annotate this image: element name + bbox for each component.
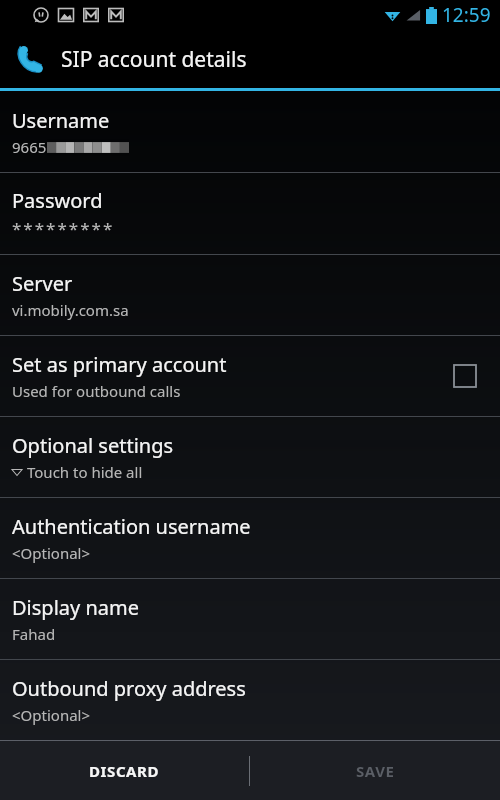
staticText: Used for outbound calls [12, 381, 181, 401]
button[interactable]: Optional settings [0, 417, 500, 497]
staticText: 9665 [12, 137, 47, 157]
staticText: Touch to hide all [27, 462, 143, 482]
button[interactable]: Set as primary account [0, 336, 500, 416]
staticText: <Optional> [12, 543, 91, 563]
staticText: vi.mobily.com.sa [12, 300, 129, 320]
staticText: Outbound proxy address [12, 675, 246, 702]
button[interactable]: Set as primary account checkbox [446, 357, 484, 395]
staticText: Server [12, 270, 73, 297]
staticText: SIP account details [61, 45, 247, 74]
button[interactable]: Server [0, 255, 500, 335]
staticText: Fahad [12, 624, 56, 644]
staticText: Authentication username [12, 513, 251, 540]
button[interactable]: Display name [0, 579, 500, 659]
button[interactable]: Authentication username [0, 498, 500, 578]
staticText: Set as primary account [12, 351, 227, 378]
staticText: SAVE [356, 761, 395, 781]
staticText: Optional settings [12, 432, 174, 459]
other: SIP phone [13, 41, 49, 77]
staticText: 12:59 [442, 2, 491, 28]
staticText: ********* [12, 217, 115, 240]
staticText: Username [12, 107, 110, 134]
button[interactable]: Password [0, 173, 500, 254]
button[interactable]: DISCARD [0, 741, 249, 800]
button[interactable]: Username [0, 91, 500, 172]
staticText: Display name [12, 594, 139, 621]
button[interactable]: SAVE [250, 741, 500, 800]
button[interactable]: Outbound proxy address [0, 660, 500, 740]
staticText: <Optional> [12, 705, 91, 725]
staticText: DISCARD [89, 761, 160, 781]
staticText: Password [12, 187, 103, 214]
